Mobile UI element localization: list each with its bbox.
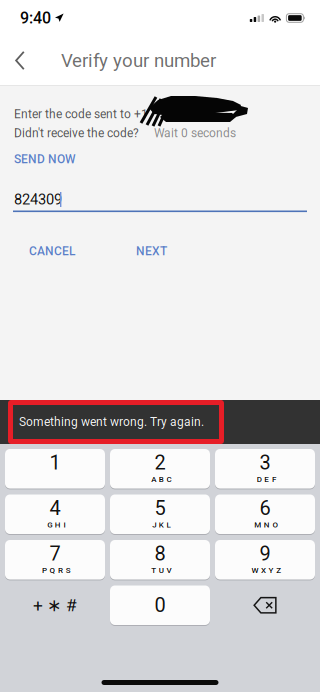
staticText: 3 — [259, 451, 270, 474]
button[interactable]: Symbols — [5, 585, 105, 625]
button[interactable]: CANCEL — [15, 237, 89, 265]
staticText: PQRS — [42, 566, 71, 575]
staticText: WXYZ — [251, 566, 281, 575]
staticText: 9:40 — [20, 9, 51, 27]
button[interactable]: 8 — [110, 540, 210, 579]
staticText: GHI — [47, 520, 65, 529]
staticText: TUV — [151, 566, 171, 575]
staticText: 824309 — [14, 191, 62, 208]
button[interactable]: 4 — [5, 494, 105, 534]
staticText: JKL — [152, 520, 170, 529]
button[interactable]: 3 — [215, 449, 315, 488]
button[interactable]: SEND NOW — [0, 145, 90, 173]
staticText: 1 — [49, 451, 60, 474]
button[interactable]: 7 — [5, 540, 105, 579]
staticText: 2 — [154, 451, 165, 474]
button[interactable]: 1 — [5, 449, 105, 488]
staticText: 9 — [259, 542, 270, 565]
staticText: Enter the code sent to +1 — [14, 107, 148, 121]
staticText: Didn't receive the code? — [14, 126, 139, 140]
staticText: 7 — [49, 542, 60, 565]
staticText: ABC — [151, 475, 171, 484]
staticText: Wait 0 seconds — [154, 126, 236, 140]
button[interactable]: Back — [0, 36, 40, 85]
button[interactable]: 6 — [215, 494, 315, 534]
button[interactable]: Delete — [215, 585, 315, 625]
staticText: MNO — [254, 520, 278, 529]
staticText: CANCEL — [29, 244, 75, 258]
staticText: DEF — [257, 475, 276, 484]
staticText: Something went wrong. Try again. — [19, 415, 204, 429]
button[interactable]: 9 — [215, 540, 315, 579]
staticText: 6 — [259, 496, 270, 520]
staticText: 4 — [49, 496, 60, 520]
button[interactable]: 2 — [110, 449, 210, 488]
staticText: NEXT — [136, 244, 167, 258]
staticText: 0 — [154, 593, 165, 617]
button[interactable]: NEXT — [122, 237, 181, 265]
staticText: Verify your number — [61, 50, 216, 71]
staticText: 8 — [154, 542, 165, 565]
staticText: SEND NOW — [14, 152, 76, 166]
staticText: 5 — [154, 496, 165, 520]
button[interactable]: 0 — [110, 585, 210, 625]
staticText: + ∗ # — [33, 595, 77, 615]
button[interactable]: 5 — [110, 494, 210, 534]
